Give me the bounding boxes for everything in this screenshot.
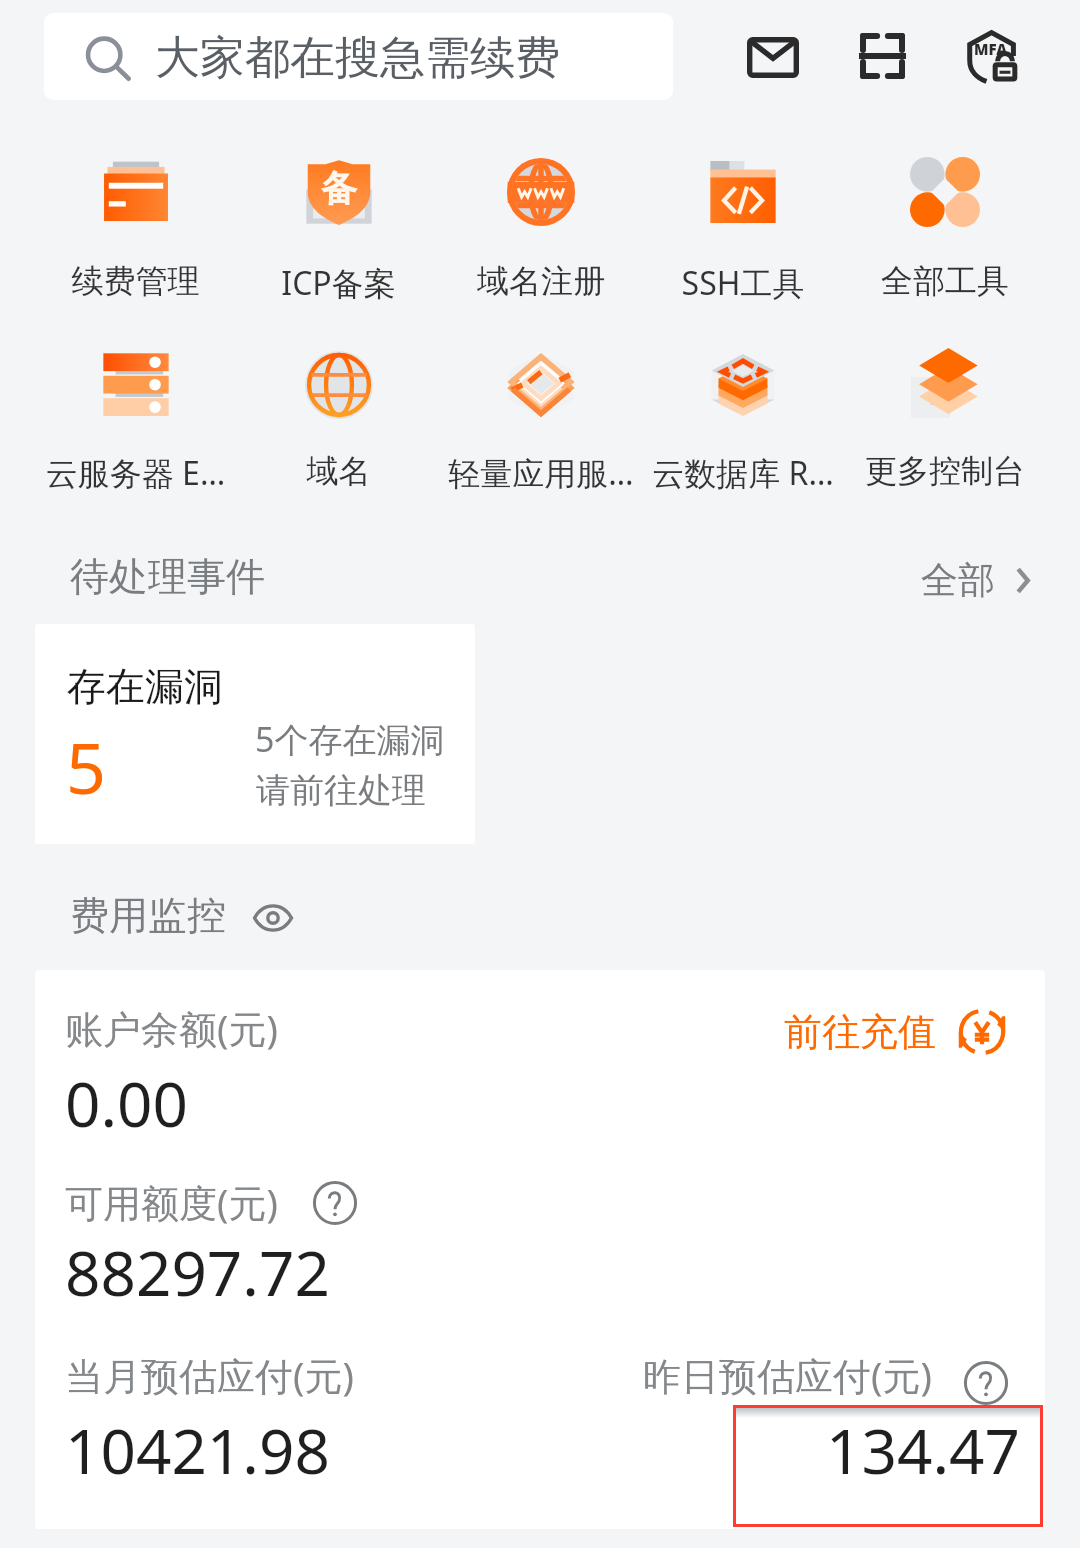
staticText: SSH工具 xyxy=(642,261,844,305)
button[interactable]: Messages xyxy=(728,12,818,102)
staticText: 10421.98 xyxy=(65,1408,330,1492)
staticText: 云数据库 R… xyxy=(642,451,844,495)
button[interactable]: 云服务器 E… xyxy=(34,338,237,538)
button[interactable]: 云数据库 R… xyxy=(642,338,844,538)
staticText: 云服务器 E… xyxy=(34,451,237,495)
staticText: 134.47 xyxy=(826,1408,1020,1492)
staticText: 昨日预估应付(元) xyxy=(643,1349,932,1401)
staticText: 请前往处理 xyxy=(256,769,426,812)
staticText: 待处理事件 xyxy=(70,552,265,601)
staticText: 账户余额(元) xyxy=(65,1002,278,1054)
button[interactable]: MFA xyxy=(946,11,1036,101)
button[interactable]: 134.47 xyxy=(733,1405,1043,1527)
button[interactable]: Toggle visibility xyxy=(248,893,298,943)
button[interactable]: Scan xyxy=(837,11,927,101)
staticText: 5 xyxy=(66,719,107,814)
button[interactable]: 大家都在搜急需续费 xyxy=(44,13,673,100)
button[interactable]: 存在漏洞 xyxy=(35,624,475,844)
staticText: 大家都在搜急需续费 xyxy=(155,30,560,87)
staticText: 前往充值 xyxy=(784,1008,936,1056)
staticText: ICP备案 xyxy=(237,261,440,305)
staticText: 轻量应用服… xyxy=(440,451,642,495)
button[interactable]: 轻量应用服… xyxy=(440,338,642,538)
staticText: 费用监控 xyxy=(70,891,226,940)
staticText: 全部工具 xyxy=(844,261,1046,301)
staticText: 88297.72 xyxy=(65,1230,330,1314)
staticText: 域名注册 xyxy=(440,261,642,301)
staticText: 更多控制台 xyxy=(844,451,1046,491)
staticText: 0.00 xyxy=(65,1061,189,1145)
staticText: 全部 xyxy=(921,557,995,604)
staticText: 5个存在漏洞 xyxy=(255,716,445,762)
button[interactable]: 续费管理 xyxy=(34,140,237,338)
staticText: 可用额度(元) xyxy=(65,1176,278,1228)
button[interactable]: 域名注册 xyxy=(440,140,642,338)
staticText: 当月预估应付(元) xyxy=(65,1349,354,1401)
staticText: 域名 xyxy=(237,451,440,491)
staticText: 续费管理 xyxy=(34,261,237,301)
staticText: 备 xyxy=(321,166,357,211)
staticText: MFA xyxy=(974,39,1008,59)
button[interactable]: 更多控制台 xyxy=(844,338,1046,538)
button[interactable]: 前往充值 xyxy=(784,1008,1006,1056)
staticText: 存在漏洞 xyxy=(67,662,223,711)
button[interactable]: 备 xyxy=(237,140,440,338)
button[interactable]: 全部工具 xyxy=(844,140,1046,338)
button[interactable]: 域名 xyxy=(237,338,440,538)
button[interactable]: SSH工具 xyxy=(642,140,844,338)
button[interactable]: 全部 xyxy=(921,550,1030,610)
